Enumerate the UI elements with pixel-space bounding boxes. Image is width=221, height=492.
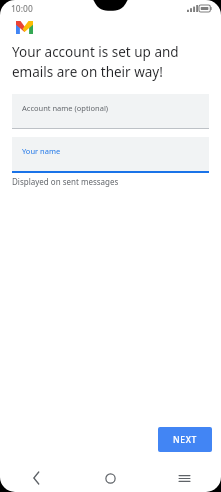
staticText: NEXT [173, 434, 198, 446]
staticText: Your name [22, 146, 61, 156]
staticText: Displayed on sent messages [12, 176, 119, 187]
button[interactable]: Your name [12, 137, 209, 173]
staticText: Your account is set up and emails are on… [12, 43, 179, 81]
button[interactable]: Account name (optional) [12, 94, 209, 129]
button[interactable]: Back [0, 464, 73, 492]
button[interactable]: Home [73, 464, 147, 492]
staticText: Account name (optional) [22, 103, 109, 113]
button[interactable]: NEXT [158, 427, 212, 452]
staticText: 10:00 [11, 3, 33, 15]
button[interactable]: Recent apps [147, 464, 221, 492]
